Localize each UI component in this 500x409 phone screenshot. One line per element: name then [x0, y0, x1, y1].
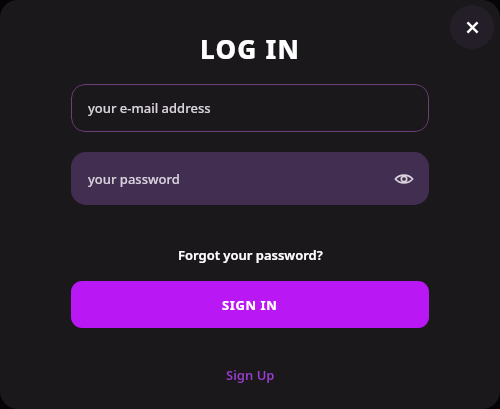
button[interactable]: Close: [450, 5, 494, 49]
staticText: Sign Up: [226, 366, 275, 384]
button[interactable]: SIGN IN: [71, 281, 429, 328]
staticText: SIGN IN: [222, 296, 278, 314]
staticText: your e-mail address: [88, 99, 211, 117]
button[interactable]: Forgot your password?: [170, 243, 331, 267]
staticText: your password: [88, 170, 180, 188]
staticText: LOG IN: [0, 31, 500, 66]
staticText: Forgot your password?: [178, 246, 323, 264]
button[interactable]: Show password: [391, 166, 417, 192]
button[interactable]: Sign Up: [216, 363, 285, 387]
button[interactable]: your password: [71, 152, 429, 205]
button[interactable]: your e-mail address: [71, 84, 429, 132]
